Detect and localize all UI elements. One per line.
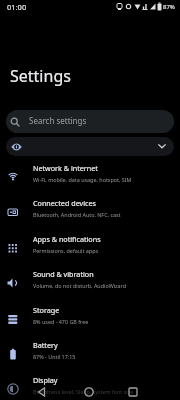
staticText: Storage (33, 305, 60, 315)
staticText: Apps & notifications (33, 234, 101, 244)
staticText: 87% - Until 17:15 (33, 353, 76, 360)
staticText: Permissions, default apps (33, 247, 99, 254)
staticText: Search settings (29, 115, 87, 126)
staticText: Bluetooth, Android Auto, NFC, cast (33, 211, 121, 218)
staticText: Connected devices (33, 198, 96, 208)
button[interactable]: Battery (0, 339, 180, 374)
staticText: Network & internet (33, 163, 98, 173)
button[interactable]: Storage (0, 304, 180, 339)
staticText: Battery (33, 340, 58, 350)
button[interactable] (127, 386, 139, 398)
staticText: 01:00 (7, 2, 27, 12)
button[interactable]: Search settings (6, 110, 174, 133)
staticText: Settings (10, 65, 71, 87)
button[interactable]: Network & internet (0, 162, 180, 197)
button[interactable]: Apps & notifications (0, 233, 180, 268)
button[interactable]: Connected devices (0, 197, 180, 232)
staticText: Wi-Fi, mobile, data usage, hotspot, SIM (33, 176, 132, 183)
staticText: Display (33, 375, 58, 385)
staticText: 87% (163, 3, 175, 11)
button[interactable] (36, 386, 48, 398)
button[interactable] (83, 386, 95, 398)
staticText: Volume, do not disturb, AudioWizard (33, 282, 127, 289)
staticText: 8% used - 470 GB free (33, 318, 89, 325)
button[interactable]: Display (0, 374, 180, 400)
button[interactable] (6, 137, 174, 156)
staticText: Brightness level, Sleep, system font siz… (33, 388, 134, 395)
staticText: Sound & vibration (33, 269, 94, 279)
button[interactable]: Sound & vibration (0, 268, 180, 303)
